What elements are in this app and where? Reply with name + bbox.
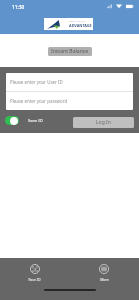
staticText: More <box>100 277 109 282</box>
button[interactable]: More <box>69 258 139 284</box>
other: Face ID <box>30 264 40 274</box>
staticText: Save ID <box>28 118 43 124</box>
staticText: 11:30 <box>12 4 25 11</box>
button[interactable]: Instant Balance <box>48 47 92 56</box>
button[interactable]: Log In <box>73 117 134 128</box>
button[interactable]: Face ID <box>0 258 69 284</box>
other: More <box>99 264 109 274</box>
staticText: Please enter your password <box>10 98 68 104</box>
staticText: F I R S T S T A T E <box>69 20 85 23</box>
staticText: Instant Balance <box>51 48 89 55</box>
staticText: Please enter your User ID <box>10 79 63 85</box>
staticText: Log In <box>96 119 111 126</box>
button[interactable]: Save ID <box>5 116 43 125</box>
staticText: Face ID <box>28 277 41 282</box>
button[interactable]: Please enter your password <box>6 92 133 110</box>
button[interactable]: Please enter your User ID <box>6 73 133 91</box>
staticText: ADVANTAGE <box>69 23 92 28</box>
